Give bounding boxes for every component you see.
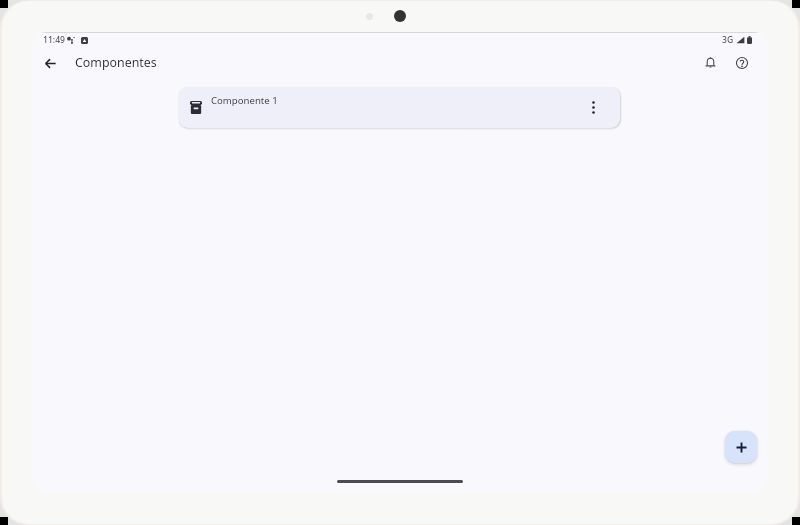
button[interactable]: More options xyxy=(581,95,605,119)
staticText: Componente 1 xyxy=(211,94,278,107)
button[interactable]: Componente 1 xyxy=(179,87,620,128)
staticText: 11:49 xyxy=(43,34,66,46)
button[interactable]: Add xyxy=(725,431,757,463)
staticText: Componentes xyxy=(75,54,157,71)
button[interactable]: Notifications xyxy=(696,49,724,77)
staticText: 3G xyxy=(722,34,734,46)
button[interactable]: Help xyxy=(728,49,756,77)
button[interactable]: Back xyxy=(36,49,64,77)
